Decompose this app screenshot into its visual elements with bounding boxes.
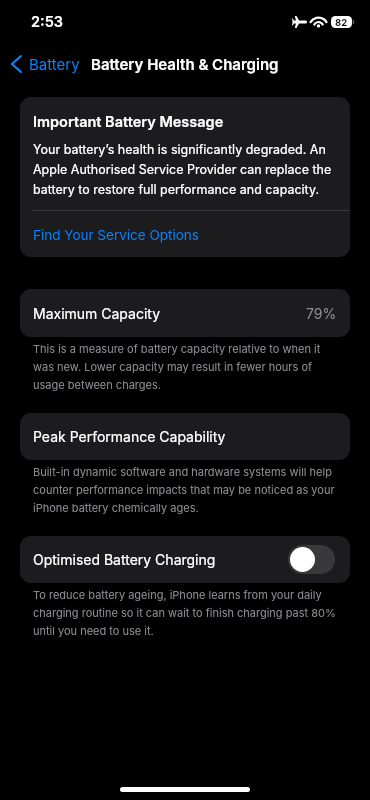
staticText: To reduce battery ageing, iPhone learns … xyxy=(33,588,348,637)
staticText: Built-in dynamic software and hardware s… xyxy=(33,465,340,514)
button[interactable]: Peak Performance Capability xyxy=(20,413,350,460)
button[interactable]: Maximum Capacity xyxy=(20,289,350,337)
staticText: 2:53 xyxy=(31,13,64,31)
staticText: Important Battery Message xyxy=(33,113,224,131)
staticText: 79% xyxy=(306,305,337,322)
staticText: Battery Health & Charging xyxy=(91,55,279,73)
button[interactable]: Find Your Service Options xyxy=(20,211,350,257)
staticText: 82 xyxy=(335,17,348,28)
staticText: Optimised Battery Charging xyxy=(33,551,216,568)
button[interactable]: Optimised Battery Charging toggle, off xyxy=(288,545,335,574)
staticText: Peak Performance Capability xyxy=(33,428,226,445)
button[interactable]: Battery xyxy=(0,50,88,78)
staticText: Find Your Service Options xyxy=(33,227,199,243)
staticText: Your battery’s health is significantly d… xyxy=(33,142,337,197)
staticText: Battery xyxy=(29,55,80,73)
staticText: Maximum Capacity xyxy=(33,305,161,322)
staticText: This is a measure of battery capacity re… xyxy=(33,342,340,391)
